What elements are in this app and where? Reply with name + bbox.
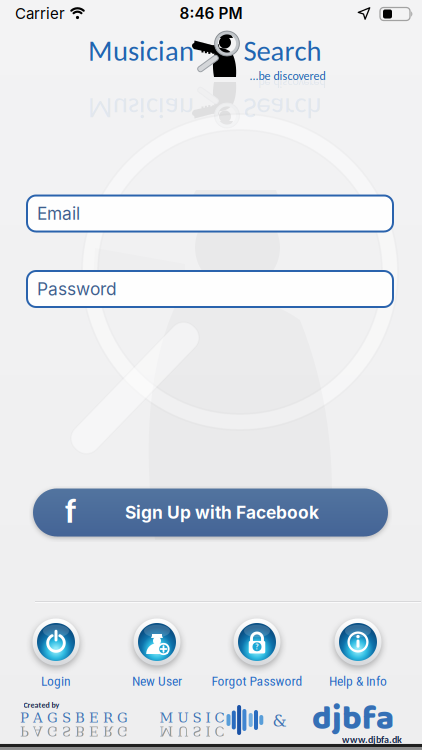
staticText: Carrier	[15, 4, 65, 23]
staticText: Created by	[23, 700, 59, 710]
button[interactable]: Login	[6, 609, 106, 693]
staticText: &	[272, 712, 286, 730]
staticText: Search	[243, 86, 321, 121]
staticText: Password	[37, 278, 117, 299]
staticText: Search	[243, 33, 321, 68]
staticText: P A G S B E R G	[20, 723, 128, 739]
button[interactable]: Password	[27, 271, 393, 307]
staticText: M U S I C	[159, 723, 224, 739]
staticText: djbfa	[312, 692, 394, 746]
staticText: www.djbfa.dk	[342, 733, 402, 746]
staticText: New User	[132, 673, 182, 689]
staticText: Forgot Password	[211, 673, 302, 689]
staticText: ?	[255, 642, 259, 652]
button[interactable]: New User	[107, 609, 207, 693]
button[interactable]: Help & Info	[308, 609, 408, 693]
staticText: Email	[37, 203, 80, 224]
staticText: Musician	[88, 33, 194, 68]
staticText: Musician	[88, 86, 194, 121]
staticText: P A G S B E R G	[20, 710, 128, 726]
staticText: Help & Info	[329, 673, 387, 689]
staticText: f	[65, 490, 76, 532]
staticText: Sign Up with Facebook	[125, 502, 319, 523]
staticText: 8:46 PM	[179, 4, 242, 23]
button[interactable]: ?	[207, 609, 307, 693]
staticText: ...be discovered	[249, 69, 325, 83]
staticText: M U S I C	[159, 710, 224, 726]
button[interactable]: f	[33, 488, 388, 536]
staticText: Login	[41, 673, 71, 689]
button[interactable]: Email	[27, 195, 393, 231]
